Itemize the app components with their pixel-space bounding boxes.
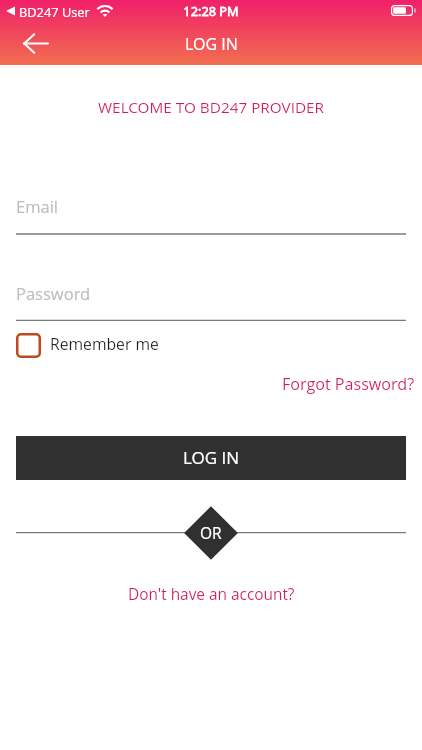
staticText: LOG IN (183, 446, 240, 469)
button[interactable]: Back (13, 22, 57, 65)
staticText: Email (16, 195, 59, 217)
staticText: WELCOME TO BD247 PROVIDER (0, 97, 422, 118)
staticText: Password (16, 282, 91, 304)
staticText: OR (200, 522, 222, 543)
button[interactable]: LOG IN (16, 436, 406, 480)
button[interactable]: Forgot Password? (282, 373, 422, 395)
button[interactable]: Remember me (16, 328, 159, 361)
staticText: BD247 User (19, 3, 90, 20)
staticText: Remember me (50, 333, 159, 354)
staticText: LOG IN (185, 33, 238, 55)
staticText: 12:28 PM (0, 2, 422, 19)
button[interactable]: Don't have an account? (128, 584, 295, 605)
